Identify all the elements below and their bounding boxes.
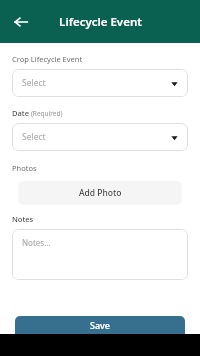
staticText: Photos: [12, 163, 37, 173]
staticText: Select: [22, 77, 46, 89]
button[interactable]: Back: [8, 9, 34, 35]
button[interactable]: Select: [12, 123, 188, 151]
staticText: Crop Lifecycle Event: [12, 54, 83, 64]
button[interactable]: Select: [12, 69, 188, 97]
staticText: Date (Required): [12, 108, 63, 118]
staticText: Notes: [12, 214, 34, 224]
button[interactable]: Save: [15, 316, 185, 334]
button[interactable]: Notes...: [12, 229, 188, 280]
staticText: Add Photo: [79, 187, 122, 199]
staticText: Save: [90, 319, 111, 331]
button[interactable]: Add Photo: [18, 181, 182, 205]
staticText: Notes...: [22, 237, 51, 248]
staticText: Lifecycle Event: [59, 14, 142, 30]
staticText: Select: [22, 131, 46, 143]
